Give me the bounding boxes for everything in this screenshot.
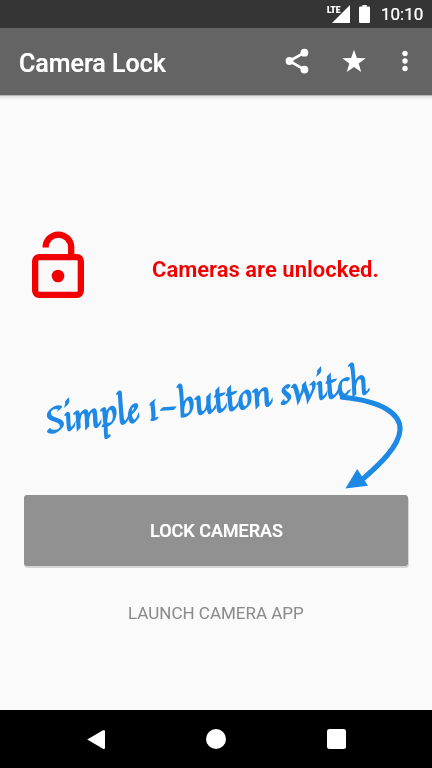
staticText: LOCK CAMERAS <box>150 520 283 541</box>
button[interactable]: Favorite <box>330 37 378 85</box>
button[interactable]: LOCK CAMERAS <box>24 495 408 566</box>
button[interactable]: Recent apps <box>309 712 363 766</box>
button[interactable]: Home <box>189 712 243 766</box>
button[interactable]: Back <box>68 712 122 766</box>
staticText: Camera Lock <box>19 49 166 78</box>
staticText: Simple 1-button switch <box>42 353 371 448</box>
staticText: LAUNCH CAMERA APP <box>128 603 304 623</box>
button[interactable]: Share <box>273 37 321 85</box>
staticText: 10:10 <box>381 4 424 24</box>
staticText: Cameras are unlocked. <box>152 257 379 283</box>
button[interactable]: More options <box>381 37 429 85</box>
button[interactable]: LAUNCH CAMERA APP <box>110 593 322 633</box>
staticText: LTE <box>327 4 341 15</box>
